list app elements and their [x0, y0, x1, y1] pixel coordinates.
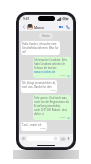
staticText: Marco Gästebeiwirt — [34, 25, 58, 29]
button[interactable]: Oh, klingt ja tatsächlich rät, ich inter… — [21, 80, 57, 93]
button[interactable] — [27, 136, 59, 141]
staticText: 12:02 — [60, 74, 66, 77]
button[interactable]: Back — [21, 24, 27, 30]
staticText: Hallo Sascha, ich suche eine neue — [22, 42, 59, 46]
button[interactable]: Voice call — [65, 24, 71, 30]
button[interactable]: Marco Gästebeiwirt — [27, 24, 58, 30]
staticText: 12:08 — [40, 127, 46, 130]
staticText: dafür 😊 — [34, 112, 45, 116]
staticText: Geschäftskundinnen. Was für eine Kost — [22, 46, 59, 50]
staticText: Schaue dir mal an: — [34, 66, 58, 70]
button[interactable]: Hallo Sascha, ich suche eine neue — [21, 41, 60, 55]
button[interactable]: Cool – mach ich sofort! — [21, 122, 47, 131]
staticText: ist? — [22, 50, 27, 54]
staticText: noch nie die Registration als — [34, 100, 69, 104]
staticText: Cool – mach ich sofort! — [22, 123, 46, 127]
staticText: siert aus. Danke für den Tipp! — [22, 85, 56, 89]
staticText: www.covidant.de — [34, 70, 56, 74]
button[interactable]: Ich brauche Covidant. Echt genial — [33, 57, 71, 78]
staticText: Ich brauche Covidant. Echt genial — [34, 58, 70, 62]
staticText: Sehr gerne. Und noch was, wenn du — [34, 96, 70, 100]
staticText: 12:06 — [60, 116, 66, 119]
staticText: 12:05 — [50, 89, 56, 92]
staticText: noch CHF 200 Rabatt - also danke — [34, 108, 70, 112]
staticText: 9:41 — [23, 17, 30, 21]
staticText: habt Covidant arbeite ich effizienter. — [34, 62, 70, 66]
staticText: Heute — [42, 34, 50, 38]
button[interactable]: Voice message — [66, 136, 71, 141]
staticText: Erstellung anmeldest, bekomme ich — [34, 104, 70, 108]
button[interactable]: Sehr gerne. Und noch was, wenn du — [33, 95, 71, 120]
button[interactable]: Video call — [58, 24, 64, 30]
button[interactable]: Attach — [21, 136, 26, 141]
staticText: Oh, klingt ja tatsächlich rät, ich inter… — [22, 81, 56, 85]
button[interactable]: Camera — [60, 136, 65, 141]
